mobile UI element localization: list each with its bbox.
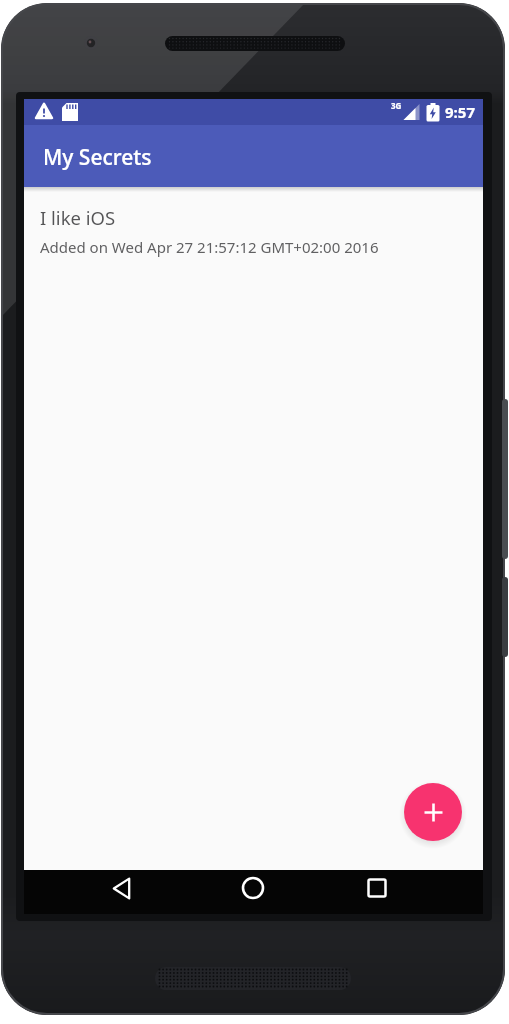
- staticText: Added on Wed Apr 27 21:57:12 GMT+02:00 2…: [40, 237, 379, 257]
- staticText: I like iOS: [40, 205, 116, 230]
- button[interactable]: My Secrets: [24, 125, 483, 187]
- button[interactable]: [404, 783, 462, 841]
- button[interactable]: I like iOS: [24, 187, 483, 271]
- staticText: My Secrets: [43, 143, 152, 172]
- button[interactable]: [108, 872, 134, 904]
- button[interactable]: [364, 872, 390, 904]
- staticText: 9:57: [445, 102, 475, 122]
- button[interactable]: [240, 872, 266, 904]
- staticText: 3G: [391, 100, 402, 111]
